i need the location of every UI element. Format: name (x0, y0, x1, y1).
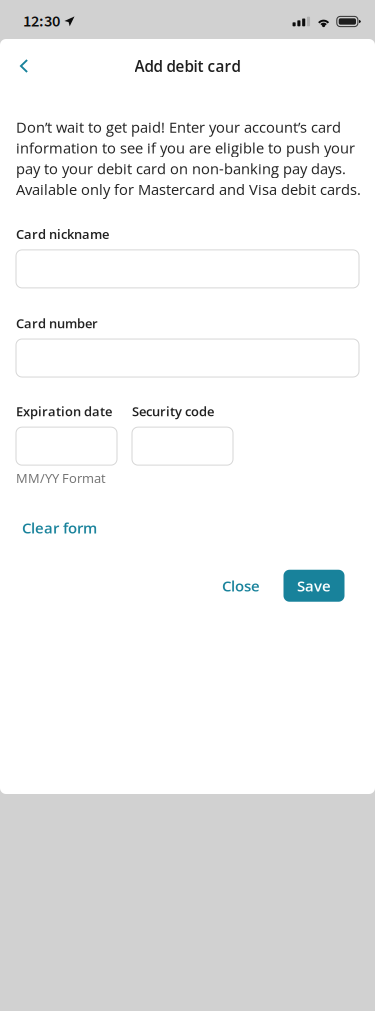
button[interactable]: Clear form (16, 512, 103, 544)
staticText: Close (222, 576, 260, 596)
staticText: Expiration date (16, 402, 112, 420)
staticText: Security code (132, 402, 214, 420)
staticText: 12:30 (23, 10, 60, 33)
button[interactable]: Save (283, 570, 344, 602)
staticText: Clear form (22, 518, 97, 538)
button[interactable]: Close (210, 570, 272, 602)
staticText: Save (297, 576, 331, 596)
staticText: Card nickname (16, 225, 109, 243)
staticText: Add debit card (134, 56, 240, 76)
staticText: MM/YY Format (16, 469, 106, 487)
staticText: Don’t wait to get paid! Enter your accou… (16, 117, 361, 199)
staticText: Card number (16, 314, 98, 332)
button[interactable]: Back (0, 49, 42, 83)
